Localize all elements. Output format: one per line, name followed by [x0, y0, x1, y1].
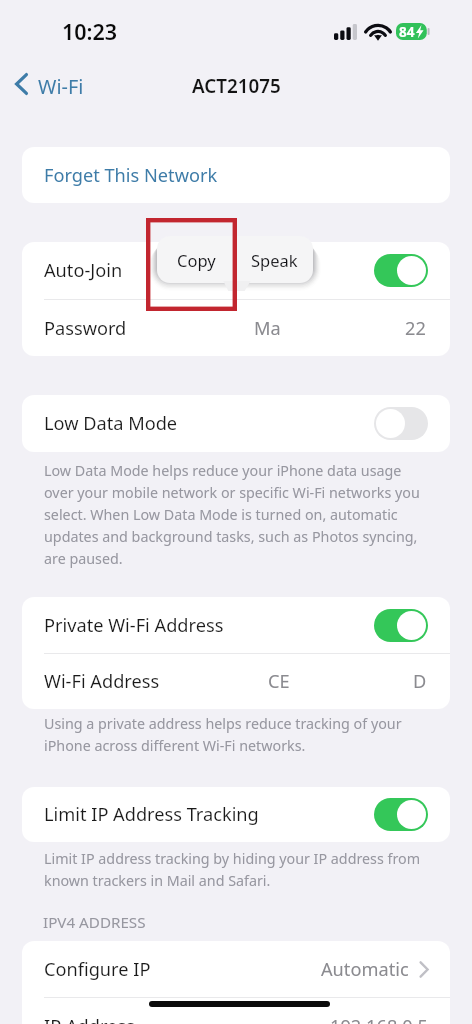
staticText: ACT21075	[192, 73, 281, 99]
staticText: D	[413, 669, 427, 694]
staticText: select. When Low Data Mode is turned on,…	[44, 505, 398, 524]
button[interactable]: Wi-Fi	[11, 67, 88, 100]
button[interactable]: Limit IP Address Tracking	[22, 787, 450, 842]
staticText: Configure IP	[44, 957, 151, 982]
staticText: Limit IP Address Tracking	[44, 802, 259, 827]
button[interactable]: Low Data Mode	[22, 395, 450, 452]
staticText: Low Data Mode	[44, 411, 178, 436]
staticText: iPhone across different Wi-Fi networks.	[44, 736, 306, 755]
staticText: Private Wi-Fi Address	[44, 613, 224, 638]
button[interactable]: Configure IP	[22, 941, 450, 997]
staticText: Automatic	[321, 957, 409, 982]
staticText: Auto-Join	[44, 258, 123, 283]
staticText: 84	[399, 23, 415, 40]
staticText: IPV4 ADDRESS	[43, 912, 146, 933]
staticText: Wi-Fi	[38, 73, 84, 100]
staticText: known trackers in Mail and Safari.	[44, 871, 271, 890]
button[interactable]: Forget This Network	[22, 147, 450, 203]
button[interactable]: IP Address	[22, 998, 450, 1024]
button[interactable]: Speak	[236, 236, 313, 283]
staticText: Forget This Network	[44, 163, 218, 188]
staticText: IP Address	[44, 1014, 135, 1024]
button[interactable]: Switch on	[374, 609, 428, 642]
staticText: 22	[405, 316, 426, 341]
button[interactable]: Switch on	[374, 798, 428, 831]
button[interactable]: Wi-Fi Address	[22, 654, 450, 709]
staticText: Speak	[251, 249, 298, 271]
staticText: CE	[268, 669, 290, 694]
staticText: updates and background tasks, such as Ph…	[44, 527, 418, 546]
button[interactable]: Private Wi-Fi Address	[22, 597, 450, 653]
staticText: Low Data Mode helps reduce your iPhone d…	[44, 461, 402, 480]
button[interactable]: Password	[22, 300, 450, 356]
staticText: Copy	[177, 249, 216, 271]
button[interactable]: Auto-Join	[22, 242, 450, 299]
staticText: Wi-Fi Address	[44, 669, 160, 694]
staticText: Ma	[254, 316, 281, 341]
staticText: over your mobile network or specific Wi-…	[44, 483, 420, 502]
staticText: Using a private address helps reduce tra…	[44, 714, 402, 733]
staticText: Password	[44, 316, 127, 341]
button[interactable]: Switch on	[374, 254, 428, 287]
button[interactable]: Copy	[157, 236, 235, 283]
staticText: 192.168.0.5	[330, 1014, 428, 1024]
staticText: 10:23	[62, 17, 118, 46]
button[interactable]: Switch off	[374, 407, 428, 440]
staticText: Limit IP address tracking by hiding your…	[44, 849, 421, 868]
staticText: are paused.	[44, 549, 123, 568]
